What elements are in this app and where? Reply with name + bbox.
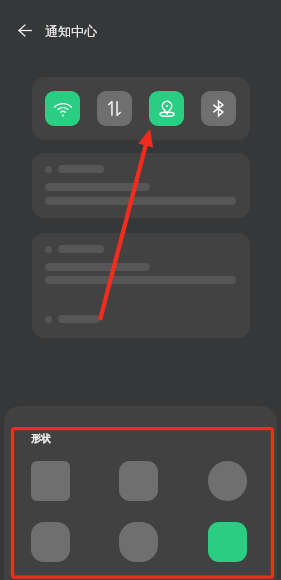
staticText: 通知中心 bbox=[45, 23, 97, 39]
button[interactable]: Shape option bbox=[119, 461, 158, 501]
button[interactable]: Shape option bbox=[208, 461, 247, 501]
button[interactable]: Notification bbox=[32, 153, 250, 218]
button[interactable]: Bluetooth bbox=[201, 91, 236, 126]
button[interactable]: Notification bbox=[32, 233, 250, 338]
button[interactable]: Shape option bbox=[119, 522, 158, 562]
button[interactable]: Shape option bbox=[31, 461, 70, 501]
button[interactable]: Shape option bbox=[31, 522, 70, 562]
button[interactable]: Wi-Fi bbox=[45, 91, 80, 126]
staticText: 形状 bbox=[31, 432, 51, 445]
button[interactable]: Location bbox=[149, 91, 184, 126]
button[interactable]: Mobile data bbox=[97, 91, 132, 126]
button[interactable]: Back bbox=[12, 17, 38, 43]
button[interactable]: Shape option bbox=[208, 522, 247, 562]
